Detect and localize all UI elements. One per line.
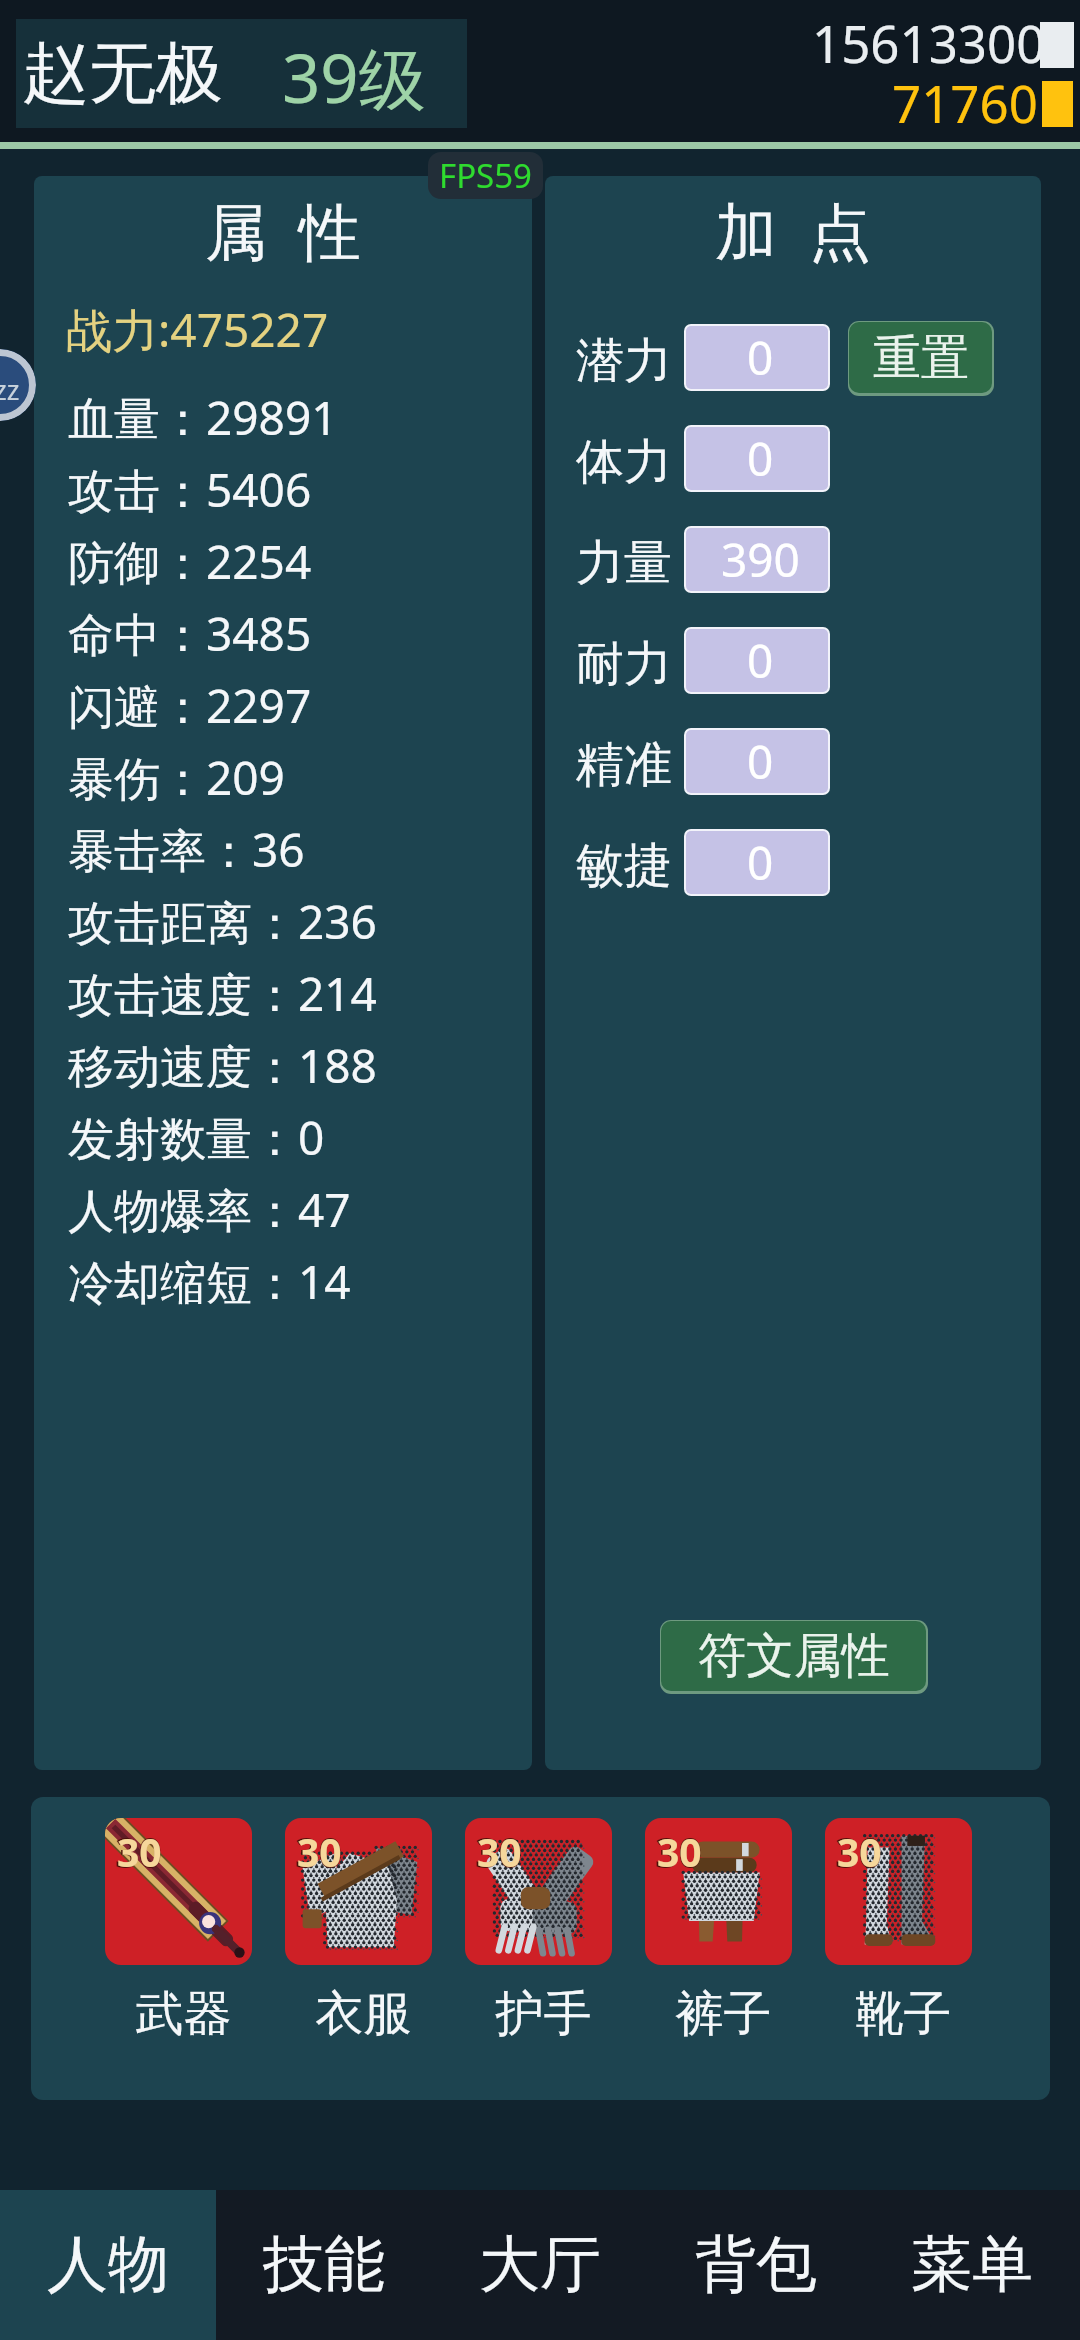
button[interactable]: Auto rest xyxy=(0,349,36,421)
button[interactable]: 30 xyxy=(105,1818,252,2032)
staticText: FPS59 xyxy=(439,153,532,198)
button[interactable]: 0 xyxy=(686,831,828,894)
staticText: 0 xyxy=(747,326,774,389)
staticText: 技能 xyxy=(263,2226,385,2303)
button[interactable]: 0 xyxy=(686,326,828,389)
staticText: 攻击距离：236 xyxy=(68,890,377,953)
staticText: 潜力 xyxy=(576,331,672,391)
staticText: 30 xyxy=(117,1825,162,1878)
staticText: 攻击速度：214 xyxy=(68,962,377,1025)
button[interactable]: 0 xyxy=(686,629,828,692)
staticText: 裤子 xyxy=(650,1984,797,2044)
staticText: 0 xyxy=(747,831,774,894)
staticText: 靴子 xyxy=(830,1984,977,2044)
button[interactable]: 0 xyxy=(686,427,828,490)
staticText: 30 xyxy=(295,1824,342,1880)
staticText: 防御：2254 xyxy=(68,530,312,593)
staticText: 符文属性 xyxy=(698,1626,890,1686)
button[interactable]: 背包 xyxy=(648,2190,864,2340)
staticText: 闪避：2297 xyxy=(68,674,312,737)
button[interactable]: 菜单 xyxy=(864,2190,1080,2340)
staticText: 耐力 xyxy=(576,634,672,694)
staticText: 30 xyxy=(475,1824,522,1880)
staticText: 血量：29891 xyxy=(68,386,338,449)
staticText: 0 xyxy=(747,730,774,793)
staticText: 力量 xyxy=(576,533,672,593)
button[interactable]: 30 xyxy=(825,1818,972,2032)
staticText: 30 xyxy=(837,1825,882,1878)
button[interactable]: 30 xyxy=(465,1818,612,2032)
staticText: 0 xyxy=(747,427,774,490)
staticText: 冷却缩短：14 xyxy=(68,1250,351,1313)
staticText: 30 xyxy=(655,1824,702,1880)
staticText: 护手 xyxy=(470,1984,617,2044)
staticText: 精准 xyxy=(576,735,672,795)
staticText: 移动速度：188 xyxy=(68,1034,377,1097)
button[interactable]: 技能 xyxy=(216,2190,432,2340)
staticText: 390 xyxy=(721,528,800,591)
staticText: 0 xyxy=(747,629,774,692)
staticText: 大厅 xyxy=(479,2226,601,2303)
staticText: 攻击：5406 xyxy=(68,458,312,521)
staticText: 武器 xyxy=(110,1984,257,2044)
staticText: 人物爆率：47 xyxy=(68,1178,351,1241)
staticText: 衣服 xyxy=(290,1984,437,2044)
staticText: zz xyxy=(0,371,20,408)
staticText: 菜单 xyxy=(911,2226,1033,2303)
staticText: 30 xyxy=(477,1825,522,1878)
staticText: 命中：3485 xyxy=(68,602,312,665)
button[interactable]: 390 xyxy=(686,528,828,591)
button[interactable]: 30 xyxy=(285,1818,432,2032)
button[interactable]: 人物 xyxy=(0,2190,216,2340)
staticText: 暴伤：209 xyxy=(68,746,285,809)
button[interactable]: 赵无极 xyxy=(16,19,467,128)
staticText: 71760 xyxy=(892,68,1038,137)
button[interactable]: 重置 xyxy=(849,322,992,393)
staticText: 发射数量：0 xyxy=(68,1106,325,1169)
staticText: 人物 xyxy=(47,2226,169,2303)
staticText: 属 性 xyxy=(34,188,532,273)
staticText: 30 xyxy=(657,1825,702,1878)
staticText: 30 xyxy=(297,1825,342,1878)
staticText: 背包 xyxy=(695,2226,817,2303)
staticText: 赵无极 xyxy=(22,31,223,115)
button[interactable]: 30 xyxy=(645,1818,792,2032)
staticText: 加 点 xyxy=(545,188,1041,273)
staticText: 重置 xyxy=(873,328,969,388)
staticText: 敏捷 xyxy=(576,836,672,896)
staticText: 体力 xyxy=(576,432,672,492)
button[interactable]: 大厅 xyxy=(432,2190,648,2340)
staticText: 30 xyxy=(115,1824,162,1880)
staticText: 15613300 xyxy=(812,8,1046,77)
staticText: 30 xyxy=(835,1824,882,1880)
button[interactable]: 符文属性 xyxy=(661,1621,926,1691)
button[interactable]: 0 xyxy=(686,730,828,793)
staticText: 39级 xyxy=(282,31,426,123)
staticText: 战力:475227 xyxy=(66,298,329,361)
staticText: 暴击率：36 xyxy=(68,818,305,881)
